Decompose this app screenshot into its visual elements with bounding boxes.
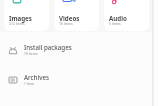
button[interactable]: Images [4,0,49,31]
button[interactable]: Videos [54,0,99,31]
staticText: Archives [24,73,49,81]
staticText: Videos [59,14,80,22]
staticText: Images [9,14,32,22]
button[interactable]: Install packages [0,41,152,72]
button[interactable]: Archives [0,71,152,102]
staticText: Install packages [24,43,72,51]
staticText: 5 items [109,21,121,26]
staticText: 16 items [59,21,73,26]
staticText: 10 items [24,51,38,56]
staticText: 1 item [24,81,35,86]
button[interactable]: Audio [104,0,149,31]
staticText: Audio [109,14,127,22]
staticText: 212 items [9,21,25,26]
